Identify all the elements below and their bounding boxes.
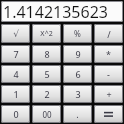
staticText: 2 xyxy=(44,88,50,100)
button[interactable]: 8 xyxy=(32,45,61,63)
staticText: 1 xyxy=(13,88,19,100)
staticText: X^2 xyxy=(40,29,53,39)
button[interactable]: 9 xyxy=(63,45,92,63)
button[interactable]: / xyxy=(94,24,123,43)
button[interactable]: 1 xyxy=(1,85,30,103)
button[interactable]: - xyxy=(94,65,123,83)
staticText: 4 xyxy=(13,68,19,80)
staticText: - xyxy=(107,68,110,80)
staticText: . xyxy=(76,108,79,120)
button[interactable]: 3 xyxy=(63,85,92,103)
staticText: % xyxy=(74,28,81,39)
staticText: 8 xyxy=(44,48,50,60)
button[interactable]: 2 xyxy=(32,85,61,103)
button[interactable]: X^2 xyxy=(32,24,61,43)
staticText: * xyxy=(106,48,111,60)
button[interactable]: % xyxy=(63,24,92,43)
staticText: 3 xyxy=(75,88,81,100)
staticText: 6 xyxy=(75,68,81,80)
staticText: / xyxy=(107,28,111,40)
staticText: 5 xyxy=(44,68,50,80)
staticText: 00 xyxy=(42,109,52,120)
button[interactable]: * xyxy=(94,45,123,63)
staticText: 9 xyxy=(75,48,81,60)
staticText: √ xyxy=(13,29,19,39)
staticText: 7 xyxy=(13,48,19,60)
button[interactable]: 00 xyxy=(32,105,61,123)
button[interactable]: 0 xyxy=(1,105,30,123)
staticText: 1.4142135623 xyxy=(3,1,121,22)
button[interactable]: 7 xyxy=(1,45,30,63)
button[interactable]: 5 xyxy=(32,65,61,83)
button[interactable]: 4 xyxy=(1,65,30,83)
button[interactable]: 6 xyxy=(63,65,92,83)
button[interactable]: . xyxy=(63,105,92,123)
staticText: + xyxy=(106,88,112,100)
staticText: 0 xyxy=(13,108,19,120)
button[interactable]: + xyxy=(94,85,123,103)
button[interactable]: √ xyxy=(1,24,30,43)
button[interactable]: Equals xyxy=(94,105,123,123)
